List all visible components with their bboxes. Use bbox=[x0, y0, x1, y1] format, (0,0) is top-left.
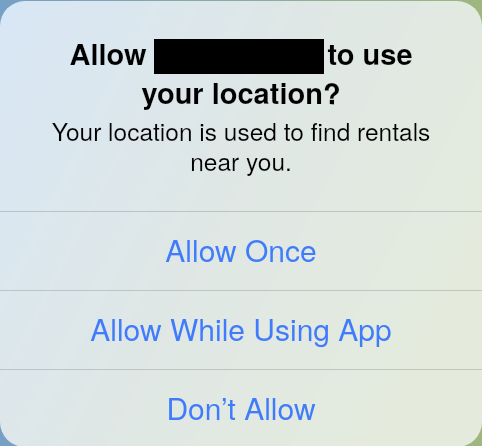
staticText: Don’t Allow bbox=[166, 386, 316, 429]
button[interactable]: Allow Once bbox=[0, 212, 482, 290]
button[interactable]: Don’t Allow bbox=[0, 370, 482, 446]
staticText: Your location is used to find rentals ne… bbox=[41, 113, 441, 178]
button[interactable]: Allow While Using App bbox=[0, 291, 482, 369]
staticText: your location? bbox=[0, 71, 482, 113]
staticText: to use bbox=[327, 32, 413, 74]
staticText: Allow Once bbox=[165, 228, 317, 271]
staticText: Allow bbox=[69, 32, 147, 74]
staticText: Allow While Using App bbox=[90, 307, 392, 350]
